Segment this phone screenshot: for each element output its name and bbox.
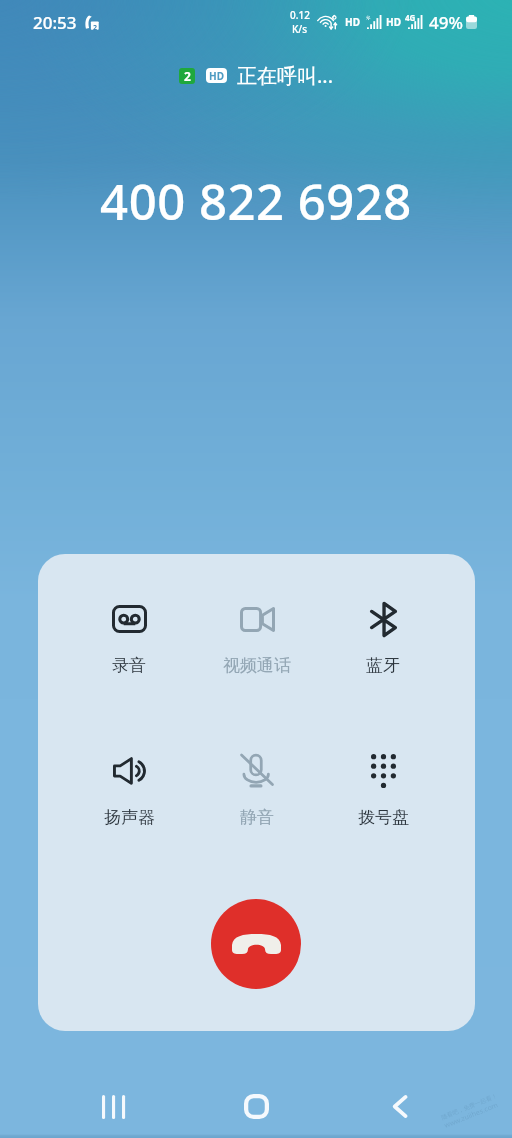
staticText: 49% xyxy=(429,11,463,34)
staticText: 20:53 xyxy=(33,11,77,34)
staticText: 扬声器 xyxy=(104,807,155,828)
staticText: HD xyxy=(209,69,224,83)
button[interactable]: End call xyxy=(211,899,301,989)
button[interactable]: 蓝牙 xyxy=(327,587,439,673)
button[interactable]: 拨号盘 xyxy=(327,739,439,825)
staticText: 2 xyxy=(184,68,191,84)
staticText: 蓝牙 xyxy=(366,655,400,676)
staticText: 0.12 xyxy=(290,8,310,22)
button[interactable]: Recents xyxy=(77,1070,150,1138)
staticText: K/s xyxy=(292,22,308,36)
button[interactable]: 视频通话 xyxy=(201,587,313,673)
staticText: 拨号盘 xyxy=(358,807,409,828)
staticText: 4G xyxy=(405,12,416,23)
button[interactable]: Home xyxy=(220,1070,293,1138)
staticText: HD xyxy=(386,15,401,29)
button[interactable]: 扬声器 xyxy=(73,739,185,825)
staticText: 静音 xyxy=(240,807,274,828)
staticText: 录音 xyxy=(112,655,146,676)
button[interactable]: 静音 xyxy=(201,739,313,825)
button[interactable]: Back xyxy=(363,1070,436,1138)
staticText: 400 822 6928 xyxy=(100,168,412,235)
staticText: HD xyxy=(345,15,360,29)
staticText: 视频通话 xyxy=(223,655,291,676)
button[interactable]: 录音 xyxy=(73,587,185,673)
staticText: 正在呼叫... xyxy=(237,62,334,89)
staticText: 2 xyxy=(93,23,98,33)
